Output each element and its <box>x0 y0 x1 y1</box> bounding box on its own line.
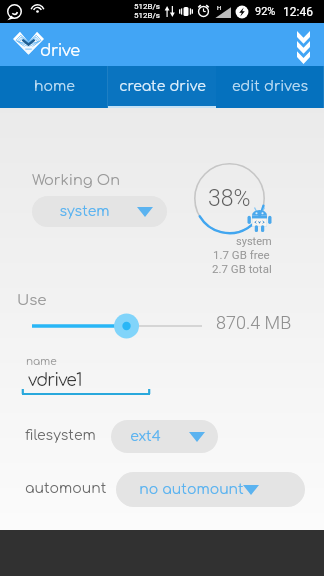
staticText: name <box>26 356 57 368</box>
staticText: Use <box>17 292 47 309</box>
staticText: create drive <box>119 79 206 95</box>
staticText: filesystem <box>25 428 96 444</box>
button[interactable]: no automount <box>116 472 305 507</box>
button[interactable]: name field <box>20 386 154 398</box>
staticText: vdrive1 <box>28 371 82 390</box>
staticText: edit drives <box>232 79 308 95</box>
button[interactable]: home <box>0 66 108 108</box>
button[interactable]: More options <box>282 24 324 66</box>
staticText: drive <box>40 42 80 60</box>
staticText: 12:46 <box>283 5 313 19</box>
staticText: 92% <box>255 5 276 18</box>
staticText: 512B/s <box>134 11 160 20</box>
staticText: 38% <box>208 185 251 212</box>
staticText: H <box>217 4 222 11</box>
staticText: home <box>34 79 75 95</box>
button[interactable]: ext4 <box>111 420 218 453</box>
staticText: 870.4 MB <box>216 312 292 333</box>
button[interactable]: Size slider <box>20 311 214 341</box>
staticText: automount <box>25 481 107 497</box>
staticText: 512B/s <box>134 2 160 11</box>
staticText: Working On <box>32 172 120 188</box>
staticText: 1.7 GB free <box>213 248 270 261</box>
button[interactable]: edit drives <box>216 66 324 108</box>
staticText: 2.7 GB total <box>212 262 272 275</box>
button[interactable]: create drive <box>108 66 216 108</box>
staticText: ext4 <box>130 429 161 445</box>
staticText: no automount <box>139 482 244 498</box>
staticText: system <box>236 235 272 248</box>
button[interactable]: system <box>32 196 167 227</box>
staticText: system <box>59 204 110 220</box>
